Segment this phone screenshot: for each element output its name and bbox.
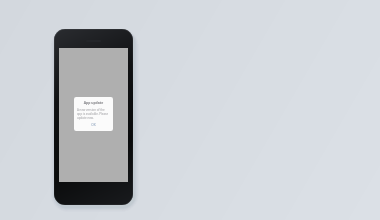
- button[interactable]: App update: [54, 29, 133, 205]
- staticText: OK: [91, 123, 96, 127]
- button[interactable]: OK: [77, 123, 110, 127]
- button[interactable]: App update: [74, 97, 113, 131]
- staticText: App update: [77, 100, 110, 105]
- staticText: A new version of the app is available. P…: [77, 108, 110, 120]
